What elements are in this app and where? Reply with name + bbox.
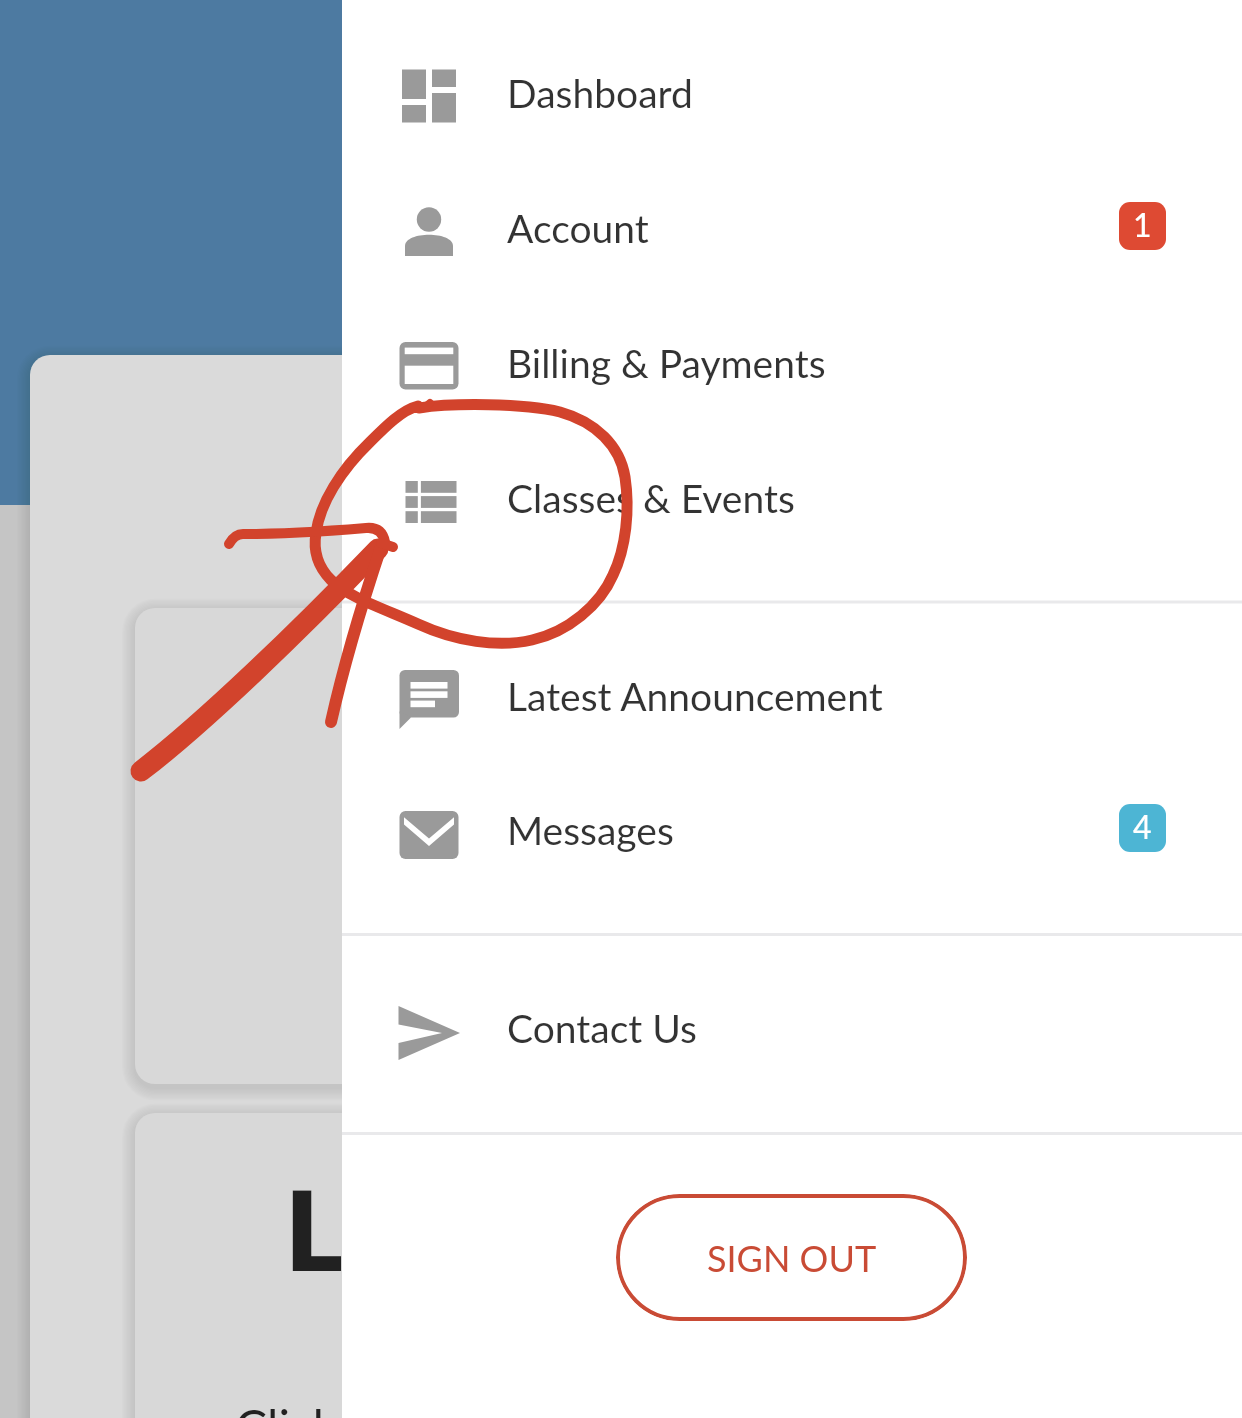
staticText: SIGN OUT bbox=[707, 1236, 877, 1279]
button[interactable]: Latest Announcement bbox=[342, 632, 1242, 766]
staticText: Account bbox=[507, 205, 649, 252]
button[interactable]: SIGN OUT bbox=[616, 1194, 967, 1321]
button[interactable]: Messages bbox=[342, 766, 1242, 900]
button[interactable]: Contact Us bbox=[342, 964, 1242, 1098]
button[interactable]: Billing & Payments bbox=[342, 299, 1242, 433]
staticText: 1 bbox=[1133, 205, 1152, 243]
button[interactable]: Account bbox=[342, 164, 1242, 298]
staticText: 4 bbox=[1133, 807, 1152, 845]
staticText: Classes & Events bbox=[507, 475, 795, 522]
staticText: Dashboard bbox=[507, 70, 693, 117]
staticText: Contact Us bbox=[507, 1005, 697, 1052]
staticText: L bbox=[285, 1162, 343, 1294]
staticText: Latest Announcement bbox=[507, 673, 883, 720]
staticText: Billing & Payments bbox=[507, 340, 826, 387]
staticText: Click bbox=[235, 1398, 338, 1418]
staticText: Messages bbox=[507, 807, 674, 854]
button[interactable]: Classes & Events bbox=[342, 434, 1242, 568]
button[interactable]: Dashboard bbox=[342, 29, 1242, 163]
